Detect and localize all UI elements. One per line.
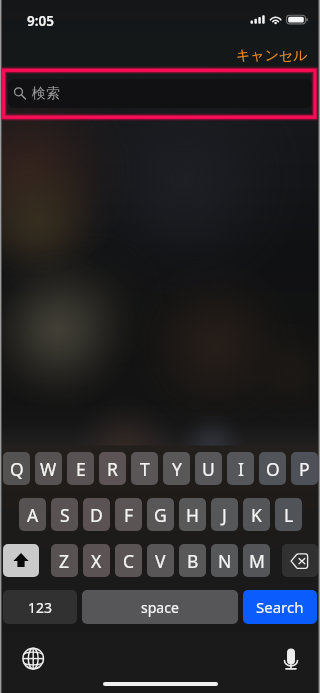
button[interactable]: V xyxy=(147,544,174,577)
staticText: P xyxy=(299,457,310,481)
staticText: R xyxy=(107,457,118,481)
staticText: space xyxy=(141,598,179,617)
button[interactable]: D xyxy=(83,498,110,531)
button[interactable]: R xyxy=(99,452,126,485)
button[interactable]: Backspace xyxy=(282,544,318,577)
button[interactable]: Z xyxy=(51,544,78,577)
staticText: Z xyxy=(59,549,70,573)
staticText: V xyxy=(155,549,166,573)
staticText: B xyxy=(187,549,199,573)
staticText: 123 xyxy=(28,598,53,617)
button[interactable]: space xyxy=(82,590,238,624)
staticText: A xyxy=(27,503,39,527)
staticText: E xyxy=(76,457,86,481)
staticText: H xyxy=(186,503,199,527)
button[interactable]: J xyxy=(211,498,238,531)
staticText: I xyxy=(238,457,244,481)
staticText: W xyxy=(40,457,57,481)
button[interactable]: W xyxy=(35,452,62,485)
staticText: Search xyxy=(256,597,304,617)
staticText: N xyxy=(218,549,232,573)
button[interactable]: B xyxy=(179,544,206,577)
staticText: Q xyxy=(10,457,24,481)
staticText: O xyxy=(266,457,280,481)
button[interactable]: G xyxy=(147,498,174,531)
button[interactable]: C xyxy=(115,544,142,577)
button[interactable]: L xyxy=(275,498,302,531)
staticText: J xyxy=(222,503,227,527)
staticText: K xyxy=(251,503,262,527)
button[interactable]: キャンセル xyxy=(228,44,308,68)
staticText: Y xyxy=(172,457,182,481)
staticText: 検索 xyxy=(32,85,60,103)
button[interactable]: S xyxy=(51,498,78,531)
button[interactable]: T xyxy=(131,452,158,485)
button[interactable]: K xyxy=(243,498,270,531)
staticText: M xyxy=(249,549,265,573)
staticText: T xyxy=(140,457,150,481)
staticText: S xyxy=(60,503,70,527)
button[interactable]: Search xyxy=(243,590,317,624)
button[interactable]: H xyxy=(179,498,206,531)
button[interactable]: X xyxy=(83,544,110,577)
staticText: L xyxy=(284,503,294,527)
button[interactable]: P xyxy=(291,452,318,485)
button[interactable]: N xyxy=(211,544,238,577)
staticText: F xyxy=(124,503,134,527)
button[interactable]: U xyxy=(195,452,222,485)
button[interactable]: F xyxy=(115,498,142,531)
staticText: X xyxy=(91,549,102,573)
button[interactable] xyxy=(8,79,312,108)
button[interactable]: Q xyxy=(3,452,30,485)
staticText: G xyxy=(154,503,167,527)
button[interactable]: E xyxy=(67,452,94,485)
button[interactable]: 123 xyxy=(3,590,77,624)
button[interactable]: M xyxy=(243,544,270,577)
button[interactable]: Shift xyxy=(3,544,39,577)
staticText: C xyxy=(123,549,135,573)
button[interactable]: I xyxy=(227,452,254,485)
staticText: D xyxy=(90,503,103,527)
staticText: キャンセル xyxy=(236,47,308,65)
button[interactable]: Dictation xyxy=(276,644,306,675)
button[interactable]: A xyxy=(19,498,46,531)
button[interactable]: Y xyxy=(163,452,190,485)
button[interactable]: O xyxy=(259,452,286,485)
button[interactable]: Next keyboard xyxy=(18,643,49,674)
staticText: U xyxy=(202,457,215,481)
staticText: 9:05 xyxy=(27,12,54,30)
